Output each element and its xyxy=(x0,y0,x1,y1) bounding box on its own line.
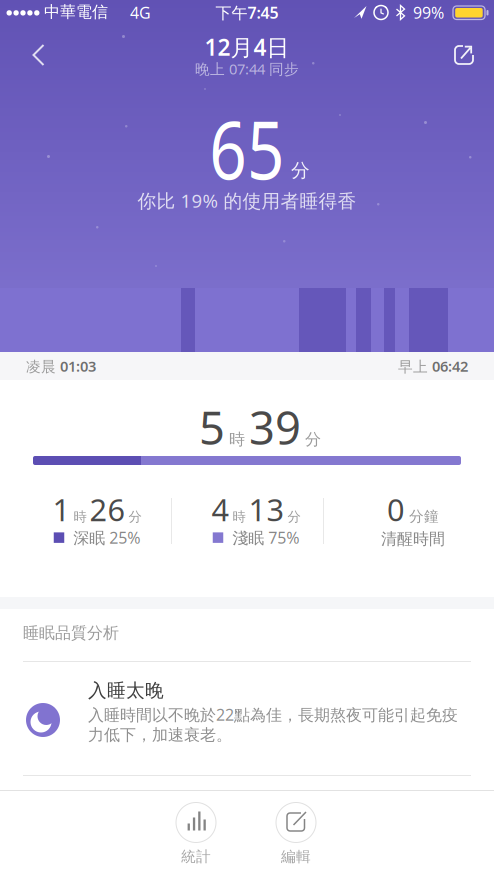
staticText: 時 xyxy=(232,509,245,525)
staticText: 統計 xyxy=(181,847,211,865)
staticText: 分 xyxy=(291,159,310,182)
staticText: 分鐘 xyxy=(409,507,439,525)
staticText: 時 xyxy=(73,509,86,525)
staticText: 4G xyxy=(130,2,151,23)
button[interactable]: 返回 xyxy=(17,34,61,78)
staticText: 時 xyxy=(229,429,245,449)
staticText: 力低下，加速衰老。 xyxy=(88,725,232,745)
staticText: 26 xyxy=(89,489,125,530)
staticText: 深眠 25% xyxy=(73,527,140,548)
staticText: 凌晨 xyxy=(26,358,56,376)
staticText: 4 xyxy=(211,489,229,530)
staticText: 分 xyxy=(128,509,141,525)
staticText: 早上 xyxy=(398,358,428,376)
staticText: 清醒時間 xyxy=(381,529,445,549)
staticText: 01:03 xyxy=(60,356,96,376)
staticText: 入睡時間以不晚於22點為佳，長期熬夜可能引起免疫 xyxy=(88,704,458,725)
staticText: 編輯 xyxy=(281,847,311,865)
staticText: 晚上 07:44 同步 xyxy=(195,59,299,78)
staticText: 5 xyxy=(199,397,225,457)
staticText: 分 xyxy=(305,429,321,449)
staticText: 睡眠品質分析 xyxy=(23,623,119,643)
staticText: 99% xyxy=(413,2,444,23)
staticText: 39 xyxy=(249,397,301,457)
staticText: 入睡太晚 xyxy=(88,679,164,702)
staticText: 淺眠 75% xyxy=(232,527,299,548)
staticText: 0 xyxy=(387,489,405,530)
staticText: 分 xyxy=(287,509,300,525)
staticText: 下午7:45 xyxy=(215,2,278,23)
staticText: 06:42 xyxy=(432,356,468,376)
button[interactable]: 統計 xyxy=(166,802,226,866)
staticText: 65 xyxy=(201,95,293,201)
staticText: 1 xyxy=(52,489,70,530)
staticText: 12月4日 xyxy=(204,32,289,62)
staticText: 13 xyxy=(248,489,284,530)
button[interactable]: 分享 xyxy=(442,33,486,77)
staticText: 中華電信 xyxy=(44,2,108,22)
staticText: 你比 19% 的使用者睡得香 xyxy=(137,188,356,213)
button[interactable]: 編輯 xyxy=(266,802,326,866)
